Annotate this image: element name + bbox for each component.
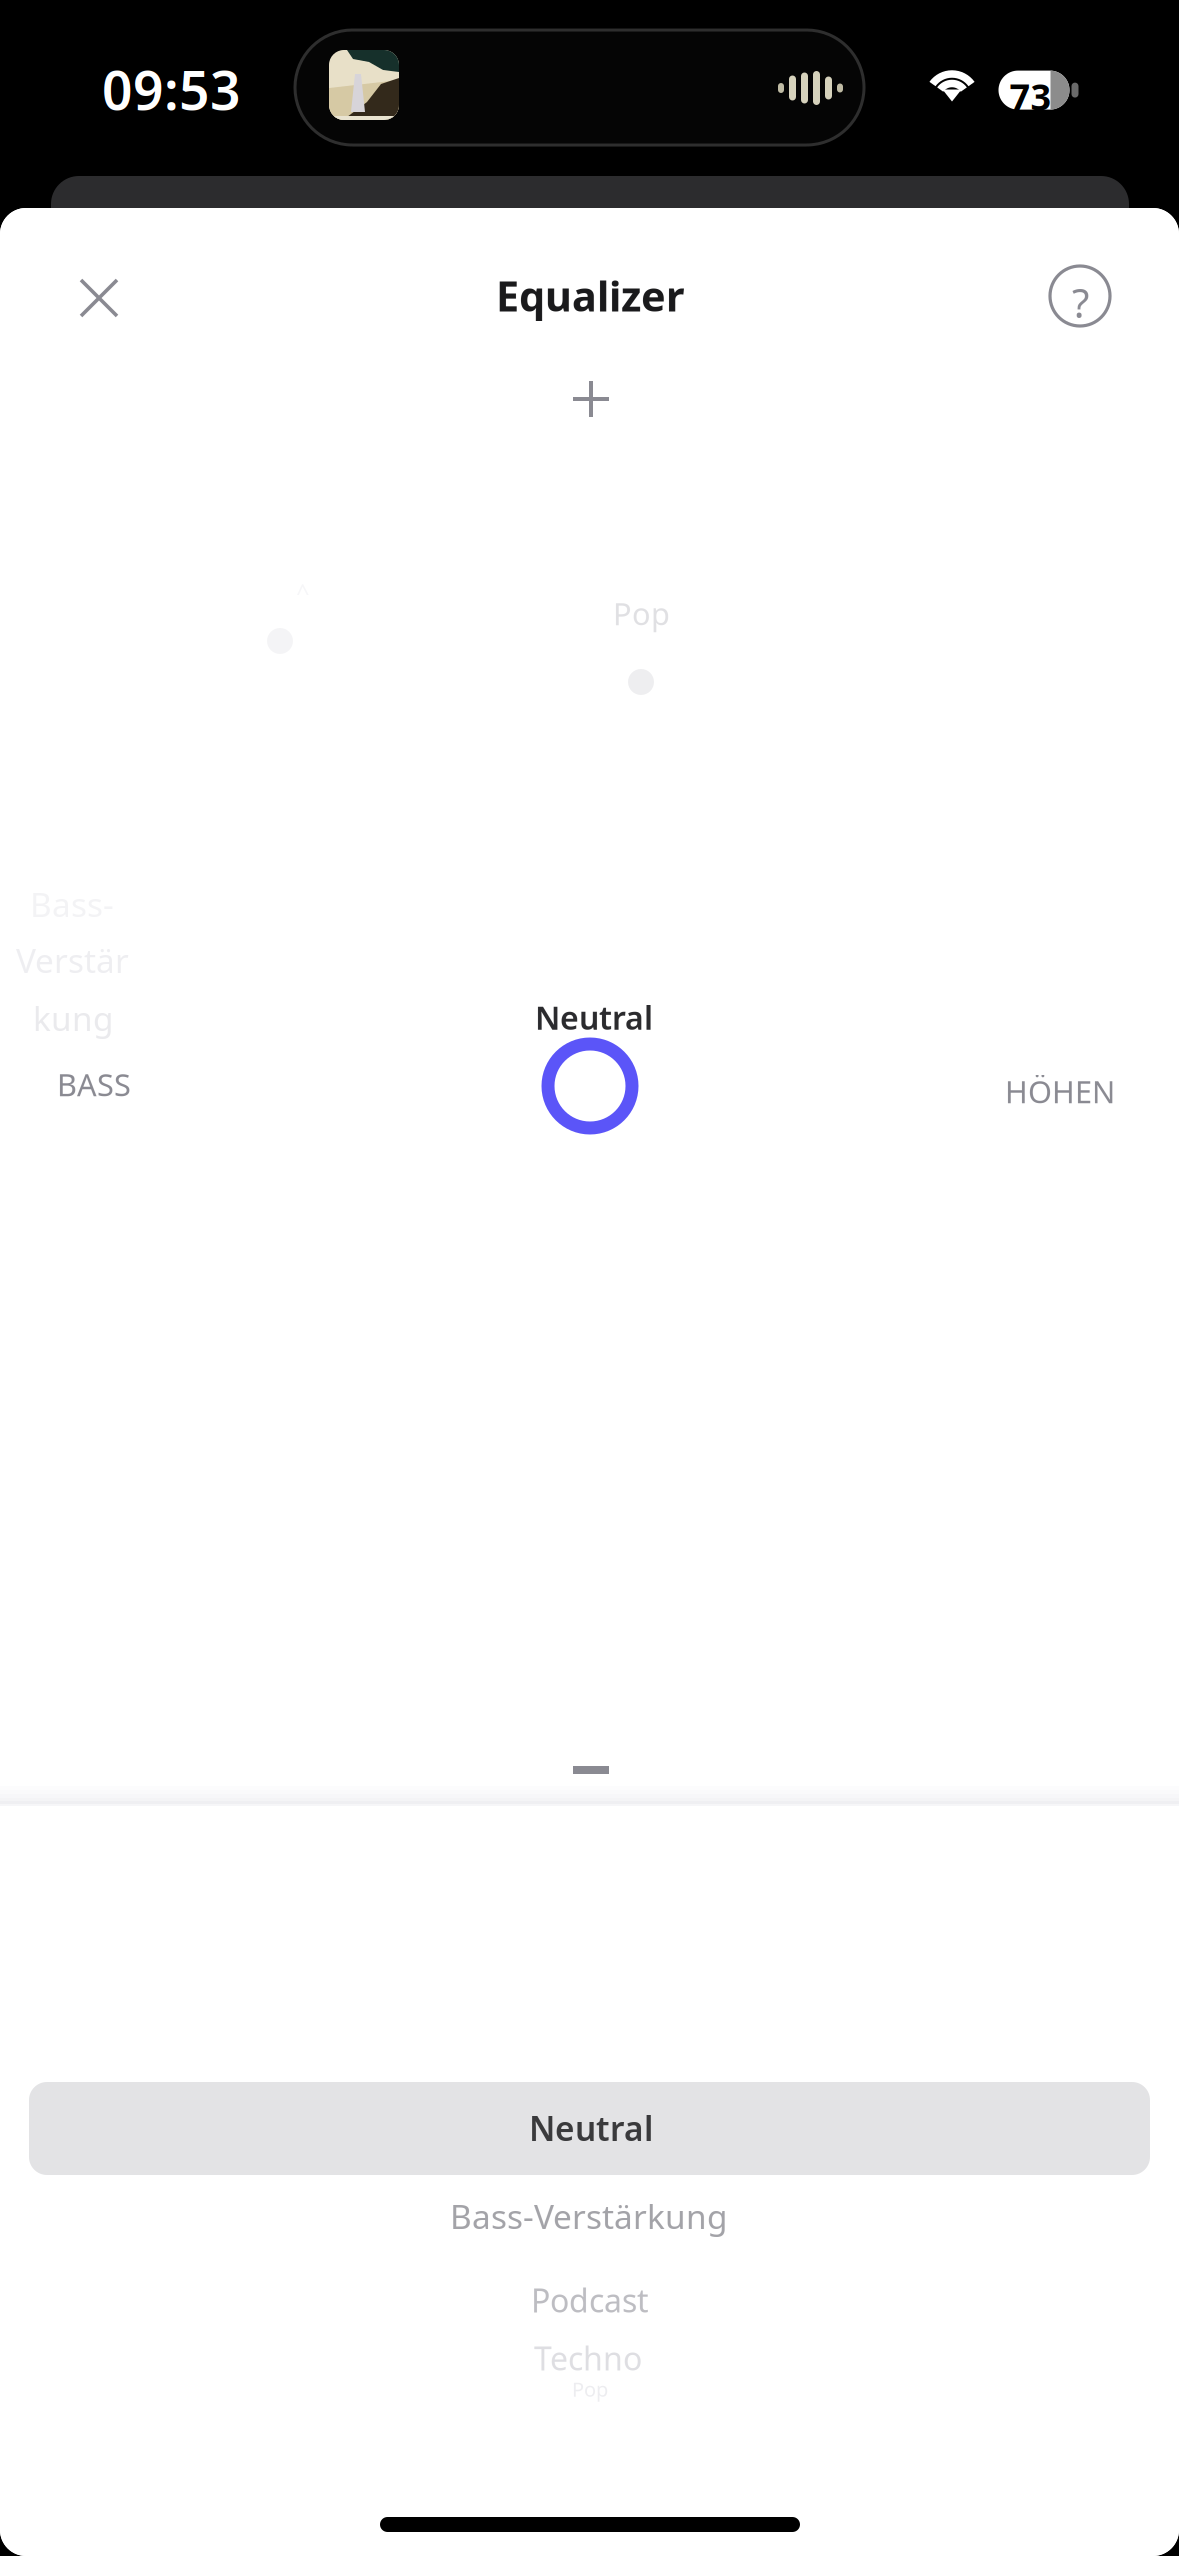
button[interactable]: Podcast	[460, 2275, 720, 2325]
staticText: Podcast	[531, 2279, 649, 2321]
staticText: 73	[1009, 73, 1051, 120]
button[interactable]: Bass-Verstärkung	[419, 2188, 759, 2244]
button[interactable]: Techno	[468, 2338, 708, 2378]
staticText: Pop	[572, 2376, 608, 2402]
staticText: kung	[33, 996, 114, 1040]
staticText: Bass-Verstärkung	[450, 2194, 728, 2238]
staticText: BASS	[57, 1064, 131, 1105]
button[interactable]: Increase level	[537, 351, 645, 447]
staticText: Bass-	[30, 882, 114, 926]
staticText: Techno	[534, 2337, 642, 2379]
button[interactable]: Close	[45, 244, 153, 352]
staticText: HÖHEN	[1005, 1071, 1115, 1112]
staticText: 09:53	[102, 54, 241, 125]
staticText: Pop	[613, 593, 670, 634]
button[interactable]: Help	[1026, 242, 1134, 350]
staticText: Verstär	[16, 938, 129, 982]
staticText: Equalizer	[496, 268, 684, 323]
staticText: ?	[1072, 276, 1089, 329]
button[interactable]: Decrease level	[537, 1722, 645, 1818]
staticText: Neutral	[535, 996, 653, 1038]
staticText: Neutral	[529, 2106, 653, 2150]
button[interactable]: Neutral	[29, 2082, 1150, 2175]
